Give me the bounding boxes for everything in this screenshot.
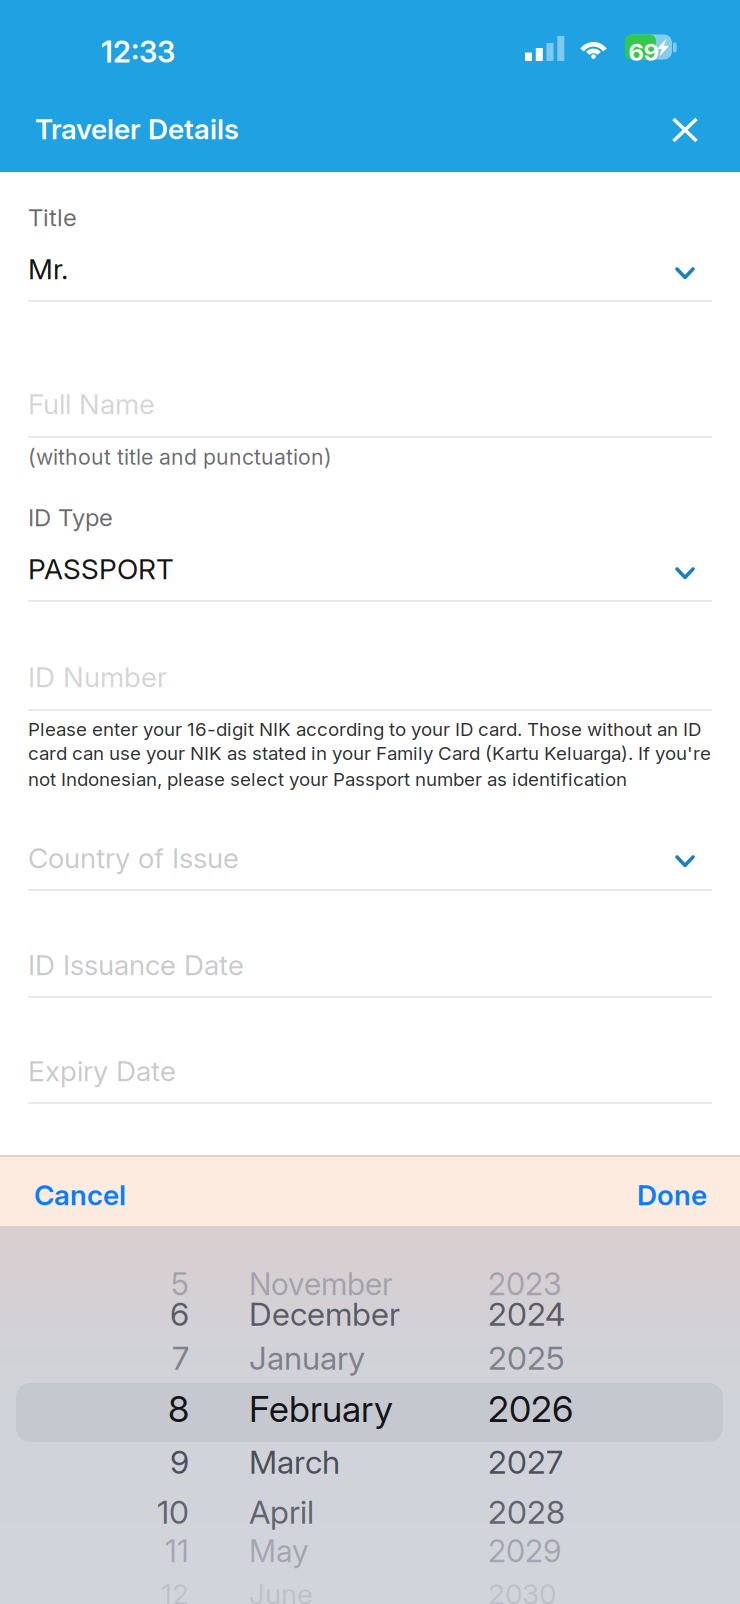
staticText: November: [249, 1265, 393, 1302]
staticText: (without title and punctuation): [28, 444, 332, 470]
staticText: June: [249, 1577, 313, 1604]
staticText: ID Number: [28, 660, 167, 694]
staticText: PASSPORT: [28, 552, 174, 586]
button[interactable]: Country of Issue: [28, 841, 712, 891]
staticText: 5: [171, 1265, 189, 1302]
button[interactable]: Done: [590, 1155, 740, 1231]
staticText: May: [249, 1532, 308, 1569]
staticText: 2030: [488, 1577, 556, 1604]
button[interactable]: Close: [637, 82, 733, 178]
staticText: 11: [165, 1532, 189, 1569]
staticText: Cancel: [34, 1178, 126, 1212]
staticText: Done: [637, 1178, 707, 1212]
staticText: 7: [172, 1339, 189, 1377]
staticText: not Indonesian, please select your Passp…: [28, 768, 627, 791]
staticText: 2024: [488, 1295, 565, 1333]
staticText: Traveler Details: [35, 112, 239, 146]
staticText: Mr.: [28, 252, 68, 286]
staticText: 2029: [488, 1532, 561, 1569]
staticText: 2027: [488, 1443, 563, 1481]
staticText: Full Name: [28, 387, 155, 421]
button[interactable]: Expiry Date: [28, 1054, 712, 1104]
staticText: January: [249, 1339, 365, 1377]
staticText: ID Type: [28, 503, 113, 532]
button[interactable]: ID Number: [28, 660, 712, 711]
staticText: March: [249, 1443, 340, 1481]
staticText: 2026: [488, 1387, 573, 1431]
staticText: card can use your NIK as stated in your …: [28, 742, 711, 765]
staticText: Expiry Date: [28, 1054, 176, 1088]
button[interactable]: ID Issuance Date: [28, 948, 712, 998]
staticText: December: [249, 1295, 400, 1333]
button[interactable]: Cancel: [0, 1155, 170, 1231]
staticText: April: [249, 1493, 314, 1531]
staticText: 12: [161, 1577, 189, 1604]
staticText: 69: [628, 37, 658, 66]
staticText: 10: [157, 1493, 189, 1531]
button[interactable]: Full Name: [28, 387, 712, 438]
staticText: ID Issuance Date: [28, 948, 244, 982]
staticText: 2023: [488, 1265, 562, 1302]
staticText: Title: [28, 203, 77, 232]
staticText: 12:33: [101, 34, 175, 69]
staticText: 2028: [488, 1493, 565, 1531]
button[interactable]: Title: [28, 203, 712, 302]
staticText: 2025: [488, 1339, 565, 1377]
staticText: 9: [170, 1443, 189, 1481]
staticText: Please enter your 16-digit NIK according…: [28, 718, 701, 741]
staticText: February: [249, 1387, 393, 1431]
button[interactable]: ID Type: [28, 503, 712, 602]
staticText: 6: [170, 1295, 189, 1333]
staticText: Country of Issue: [28, 841, 239, 875]
staticText: 8: [168, 1387, 189, 1431]
